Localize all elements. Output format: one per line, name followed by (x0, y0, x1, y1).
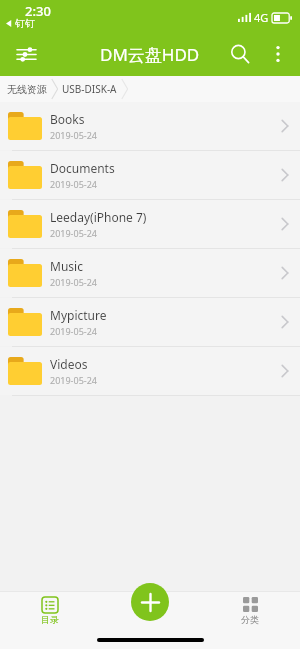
staticText: USB-DISK-A (62, 82, 117, 96)
button[interactable]: 分类 (200, 591, 300, 631)
staticText: 2019-05-24 (50, 129, 97, 141)
staticText: Books (50, 111, 85, 127)
staticText: 2:30 (25, 2, 51, 20)
staticText: 2019-05-24 (50, 178, 97, 190)
button[interactable]: Videos (0, 347, 300, 395)
staticText: 无线资源 (7, 83, 47, 96)
button[interactable]: Mypicture (0, 298, 300, 346)
staticText: Videos (50, 356, 88, 372)
staticText: 4G (254, 10, 269, 25)
button[interactable]: Leeday(iPhone 7) (0, 200, 300, 248)
button[interactable]: Music (0, 249, 300, 297)
staticText: Documents (50, 160, 115, 176)
staticText: 2019-05-24 (50, 374, 97, 386)
button[interactable]: Documents (0, 151, 300, 199)
button[interactable]: 无线资源 (4, 80, 50, 99)
staticText: 2019-05-24 (50, 325, 97, 337)
staticText: 2019-05-24 (50, 276, 97, 288)
button[interactable]: Books (0, 102, 300, 150)
button[interactable]: USB-DISK-A (59, 79, 120, 99)
button[interactable]: Add (131, 583, 169, 621)
button[interactable]: Filter (8, 36, 44, 72)
staticText: 分类 (241, 614, 259, 625)
staticText: DM云盘HDD (100, 43, 200, 66)
staticText: 钉钉 (15, 17, 35, 30)
staticText: 目录 (41, 614, 59, 625)
button[interactable]: 目录 (0, 591, 100, 631)
button[interactable]: More options (260, 36, 296, 72)
staticText: Leeday(iPhone 7) (50, 209, 147, 225)
staticText: 2019-05-24 (50, 227, 97, 239)
staticText: Mypicture (50, 307, 107, 323)
staticText: Music (50, 258, 83, 274)
button[interactable]: Search (220, 34, 260, 74)
